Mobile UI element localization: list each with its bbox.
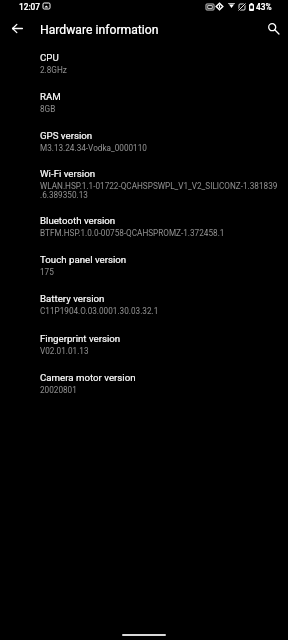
staticText: CPU <box>40 52 59 63</box>
staticText: Touch panel version <box>40 254 127 265</box>
staticText: 8GB <box>40 104 56 114</box>
staticText: 20020801 <box>40 385 77 395</box>
staticText: 175 <box>40 267 54 277</box>
staticText: BTFM.HSP.1.0.0-00758-QCAHSPROMZ-1.372458… <box>40 228 225 238</box>
button[interactable]: CPU <box>0 52 288 75</box>
staticText: V02.01.01.13 <box>40 346 89 356</box>
staticText: Wi-Fi version <box>40 168 96 179</box>
staticText: Fingerprint version <box>40 333 121 344</box>
staticText: WLAN.HSP.1.1-01722-QCAHSPSWPL_V1_V2_SILI… <box>40 181 278 200</box>
button[interactable]: Navigate up <box>4 15 31 42</box>
button[interactable]: Camera motor version <box>0 372 288 395</box>
button[interactable]: Wi-Fi version <box>0 168 288 200</box>
staticText: GPS version <box>40 130 93 141</box>
staticText: Bluetooth version <box>40 215 116 226</box>
button[interactable]: Bluetooth version <box>0 215 288 238</box>
staticText: Camera motor version <box>40 372 136 383</box>
staticText: 12:07 <box>19 2 41 12</box>
staticText: Battery version <box>40 293 105 304</box>
button[interactable]: RAM <box>0 91 288 114</box>
button[interactable]: Battery version <box>0 293 288 316</box>
button[interactable]: Fingerprint version <box>0 333 288 356</box>
staticText: RAM <box>40 91 61 102</box>
staticText: M3.13.24.34-Vodka_0000110 <box>40 143 147 153</box>
button[interactable]: Touch panel version <box>0 254 288 277</box>
staticText: 2.8GHz <box>40 65 67 75</box>
button[interactable]: GPS version <box>0 130 288 153</box>
staticText: C11P1904.O.03.0001.30.03.32.1 <box>40 306 159 316</box>
button[interactable]: Search <box>260 15 287 42</box>
staticText: Hardware information <box>40 23 159 37</box>
staticText: 43% <box>256 2 272 12</box>
